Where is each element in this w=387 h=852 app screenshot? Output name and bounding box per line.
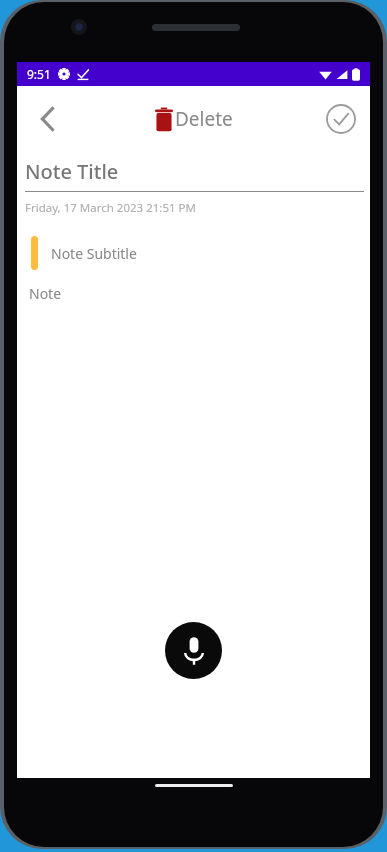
button[interactable]: Save note [320,98,362,140]
button[interactable]: Delete [155,106,233,132]
button[interactable]: Back [25,97,69,141]
staticText: Delete [175,106,233,132]
staticText: Note Subtitle [51,244,137,263]
button[interactable]: Note Subtitle [17,236,370,270]
staticText: Note [29,284,62,303]
staticText: 9:51 [27,66,51,82]
staticText: Friday, 17 March 2023 21:51 PM [25,200,196,216]
button[interactable]: Record voice note [165,622,222,679]
staticText: Note Title [25,158,119,185]
